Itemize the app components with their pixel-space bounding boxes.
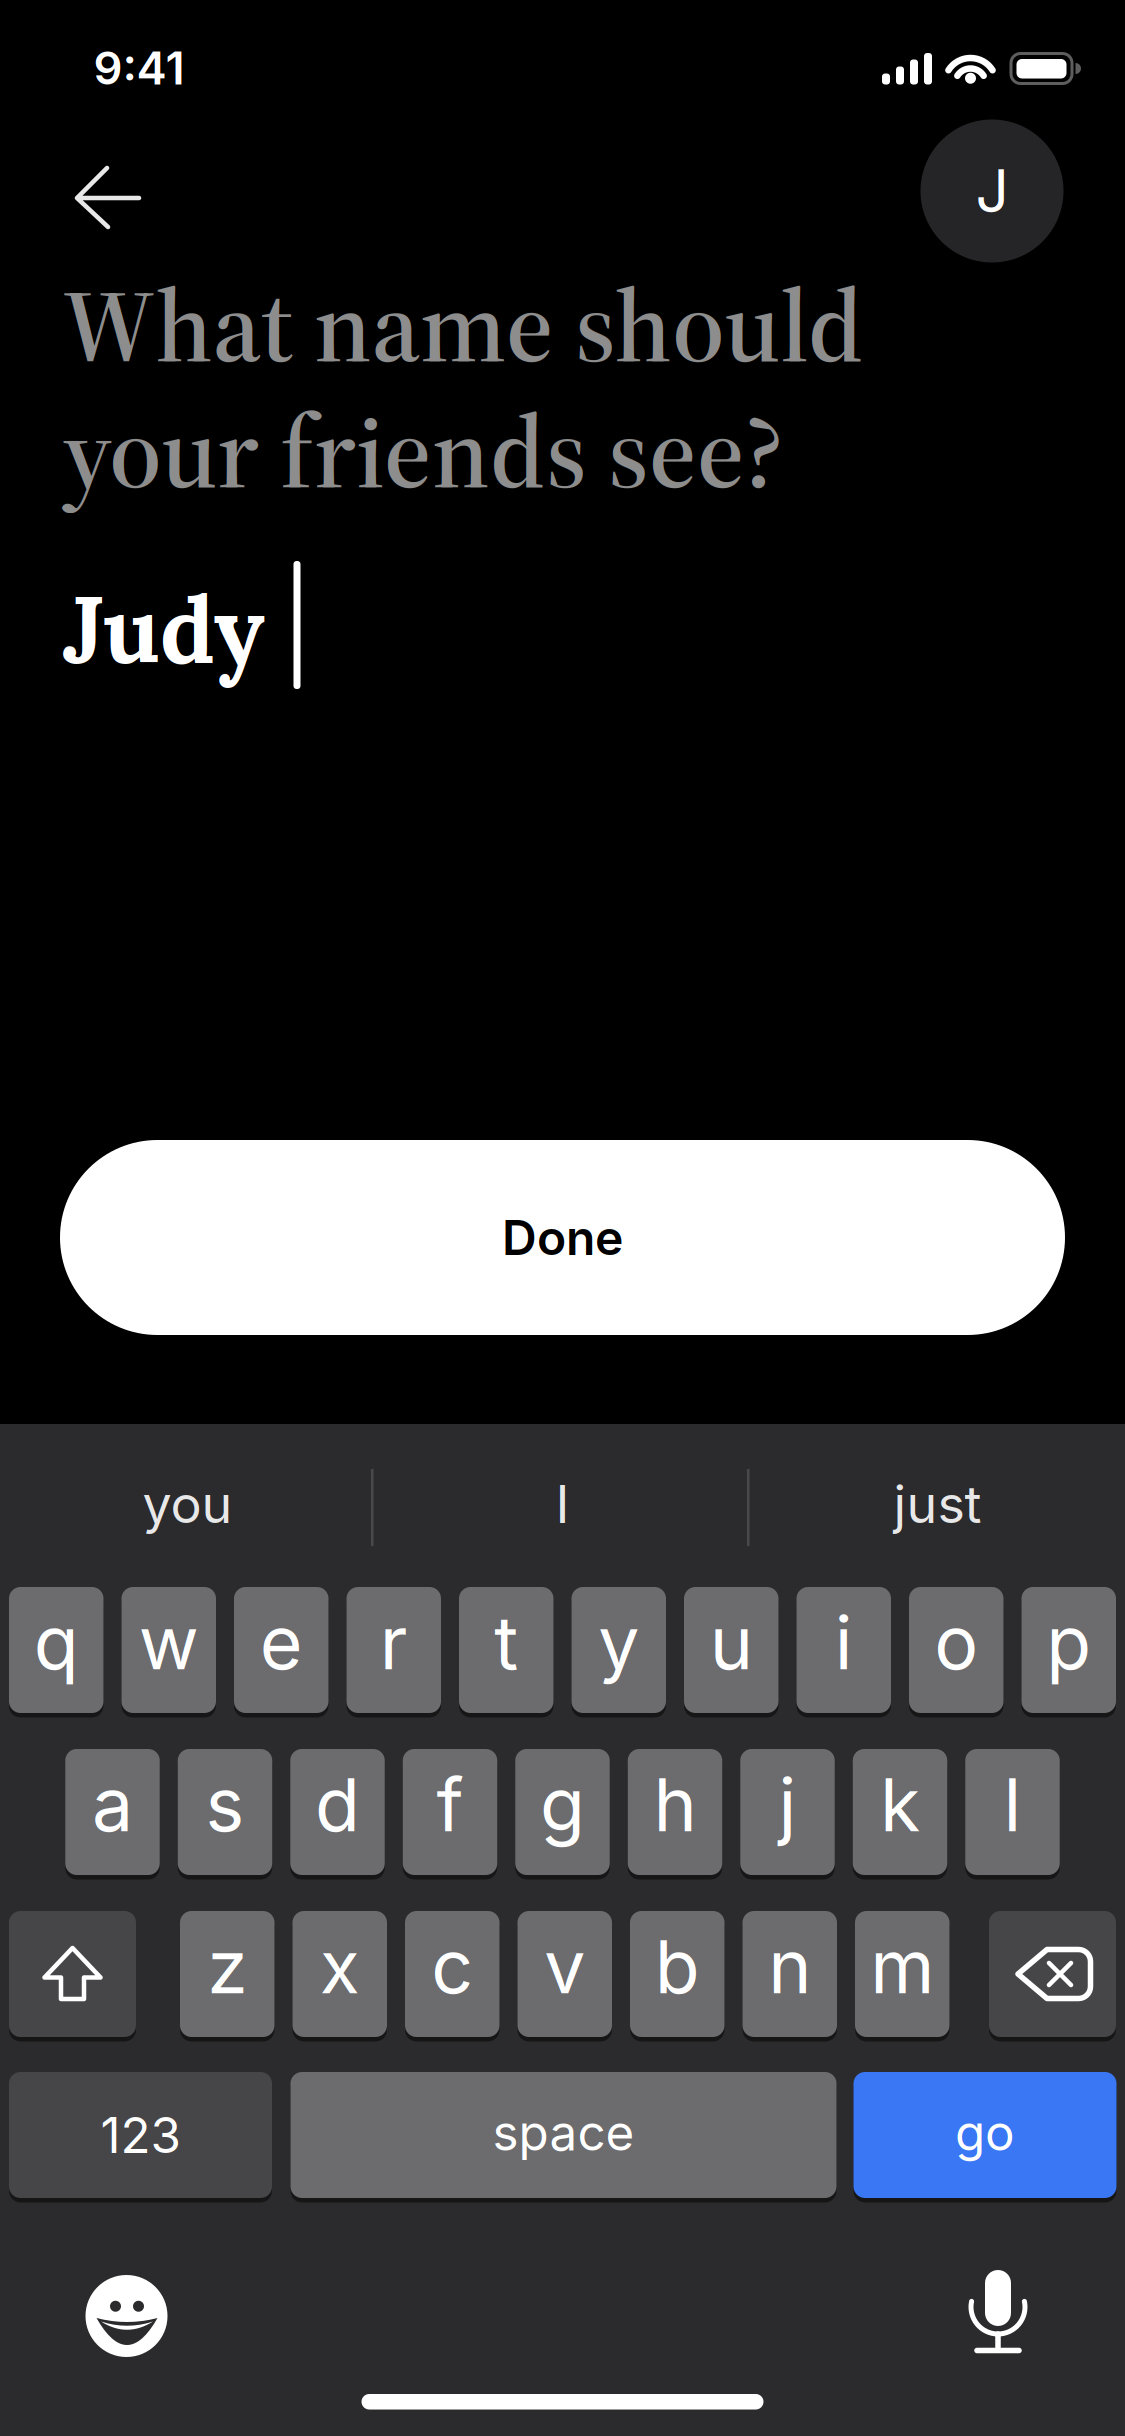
button[interactable]: b bbox=[630, 1908, 724, 2039]
button[interactable] bbox=[71, 2261, 181, 2371]
staticText: What name should bbox=[63, 255, 863, 396]
button[interactable]: c bbox=[405, 1908, 499, 2039]
staticText: your friends see? bbox=[63, 381, 784, 522]
staticText: u bbox=[710, 1598, 753, 1687]
button[interactable]: d bbox=[290, 1746, 385, 1877]
staticText: m bbox=[870, 1922, 934, 2011]
button[interactable]: go bbox=[853, 2069, 1116, 2200]
staticText: l bbox=[1003, 1760, 1021, 1849]
button[interactable]: you bbox=[12, 1444, 362, 1564]
staticText: w bbox=[139, 1598, 199, 1687]
button[interactable]: space bbox=[290, 2069, 836, 2200]
staticText: d bbox=[315, 1760, 360, 1849]
button[interactable] bbox=[989, 1908, 1116, 2039]
staticText: x bbox=[320, 1922, 360, 2011]
staticText: J bbox=[975, 155, 1008, 226]
button[interactable]: j bbox=[740, 1746, 835, 1877]
staticText: q bbox=[34, 1598, 79, 1687]
staticText: b bbox=[655, 1922, 700, 2011]
button[interactable]: y bbox=[571, 1584, 666, 1715]
staticText: 9:41 bbox=[93, 41, 184, 95]
button[interactable]: r bbox=[346, 1584, 441, 1715]
staticText: h bbox=[653, 1760, 696, 1849]
staticText: j bbox=[778, 1760, 796, 1849]
button[interactable]: l bbox=[965, 1746, 1060, 1877]
button[interactable] bbox=[49, 143, 159, 253]
button[interactable]: x bbox=[292, 1908, 387, 2039]
staticText: o bbox=[934, 1598, 978, 1687]
staticText: t bbox=[494, 1598, 518, 1687]
button[interactable]: just bbox=[762, 1444, 1112, 1564]
staticText: e bbox=[260, 1598, 303, 1687]
staticText: g bbox=[540, 1760, 585, 1849]
button[interactable]: n bbox=[742, 1908, 837, 2039]
staticText: k bbox=[880, 1760, 920, 1849]
button[interactable]: v bbox=[517, 1908, 612, 2039]
button[interactable]: q bbox=[9, 1584, 103, 1715]
staticText: y bbox=[598, 1598, 639, 1687]
staticText: f bbox=[436, 1760, 463, 1849]
button[interactable]: J bbox=[920, 119, 1063, 262]
staticText: you bbox=[142, 1472, 232, 1535]
staticText: z bbox=[207, 1922, 247, 2011]
button[interactable]: o bbox=[909, 1584, 1003, 1715]
button[interactable]: i bbox=[796, 1584, 891, 1715]
staticText: a bbox=[92, 1760, 133, 1849]
staticText: p bbox=[1046, 1598, 1091, 1687]
button[interactable]: a bbox=[65, 1746, 160, 1877]
button[interactable]: m bbox=[855, 1908, 949, 2039]
staticText: s bbox=[205, 1760, 244, 1849]
staticText: c bbox=[431, 1922, 473, 2011]
button[interactable]: w bbox=[121, 1584, 216, 1715]
staticText: just bbox=[893, 1472, 981, 1535]
staticText: go bbox=[955, 2103, 1015, 2162]
staticText: i bbox=[835, 1598, 853, 1687]
button[interactable]: e bbox=[234, 1584, 328, 1715]
button[interactable]: t bbox=[459, 1584, 553, 1715]
staticText: 123 bbox=[100, 2105, 180, 2165]
button[interactable]: f bbox=[403, 1746, 497, 1877]
button[interactable] bbox=[943, 2257, 1053, 2367]
staticText: Judy bbox=[63, 570, 265, 688]
button[interactable]: k bbox=[853, 1746, 947, 1877]
button[interactable]: Done bbox=[60, 1140, 1065, 1335]
button[interactable]: z bbox=[180, 1908, 274, 2039]
button[interactable]: I bbox=[387, 1444, 737, 1564]
button[interactable]: Judy bbox=[63, 570, 265, 688]
button[interactable]: u bbox=[684, 1584, 778, 1715]
button[interactable]: s bbox=[178, 1746, 272, 1877]
staticText: n bbox=[768, 1922, 811, 2011]
button[interactable]: p bbox=[1021, 1584, 1116, 1715]
staticText: r bbox=[380, 1598, 408, 1687]
staticText: v bbox=[544, 1922, 585, 2011]
button[interactable]: g bbox=[515, 1746, 610, 1877]
button[interactable] bbox=[9, 1908, 136, 2039]
staticText: Done bbox=[502, 1208, 623, 1267]
staticText: I bbox=[555, 1472, 569, 1535]
staticText: space bbox=[492, 2103, 634, 2162]
button[interactable]: 123 bbox=[9, 2069, 272, 2200]
button[interactable]: h bbox=[628, 1746, 722, 1877]
